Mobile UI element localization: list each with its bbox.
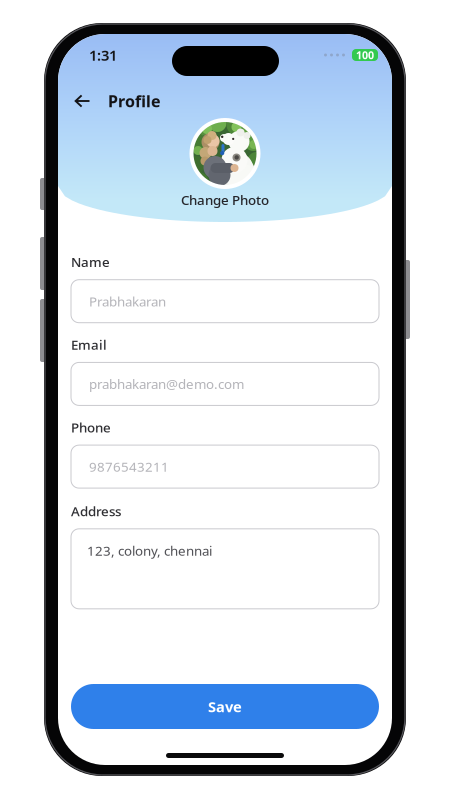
- staticText: Email: [71, 336, 107, 353]
- staticText: prabhakaran@demo.com: [89, 375, 244, 393]
- button[interactable]: 123, colony, chennai: [71, 529, 379, 609]
- staticText: Phone: [71, 418, 111, 436]
- button[interactable]: prabhakaran@demo.com: [71, 362, 379, 405]
- button[interactable]: 9876543211: [71, 445, 379, 488]
- staticText: 9876543211: [89, 458, 169, 475]
- staticText: Name: [71, 253, 110, 271]
- button[interactable]: Save: [71, 684, 379, 729]
- staticText: Profile: [108, 90, 161, 112]
- staticText: 1:31: [89, 45, 117, 65]
- button[interactable]: Back: [70, 88, 96, 114]
- staticText: Change Photo: [181, 191, 269, 209]
- staticText: 100: [356, 48, 374, 62]
- staticText: Save: [208, 697, 242, 716]
- button[interactable]: Profile photo: [191, 120, 258, 187]
- button[interactable]: Change Photo: [181, 191, 269, 209]
- staticText: Address: [71, 502, 121, 520]
- staticText: 123, colony, chennai: [87, 542, 212, 559]
- staticText: Prabhakaran: [89, 292, 166, 310]
- button[interactable]: Prabhakaran: [71, 280, 379, 323]
